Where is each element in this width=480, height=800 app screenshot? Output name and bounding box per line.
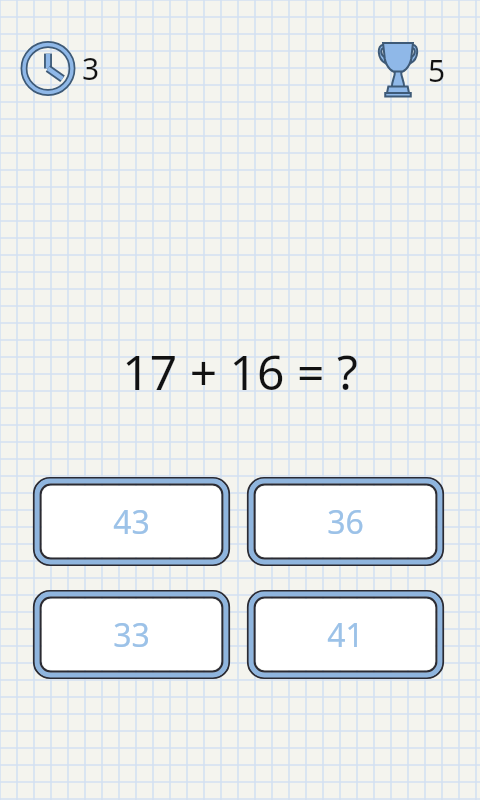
staticText: 33 [113,613,150,657]
staticText: 5 [428,50,446,91]
staticText: 36 [327,500,364,544]
staticText: 41 [327,613,364,657]
button[interactable]: 33 [33,590,230,679]
button[interactable]: Lives remaining [20,41,120,96]
staticText: 17 + 16 = ? [122,339,358,404]
staticText: 43 [113,500,150,544]
button[interactable]: 36 [247,477,444,566]
button[interactable]: 43 [33,477,230,566]
button[interactable]: 41 [247,590,444,679]
staticText: 3 [82,48,100,89]
button[interactable]: Score [376,38,462,98]
